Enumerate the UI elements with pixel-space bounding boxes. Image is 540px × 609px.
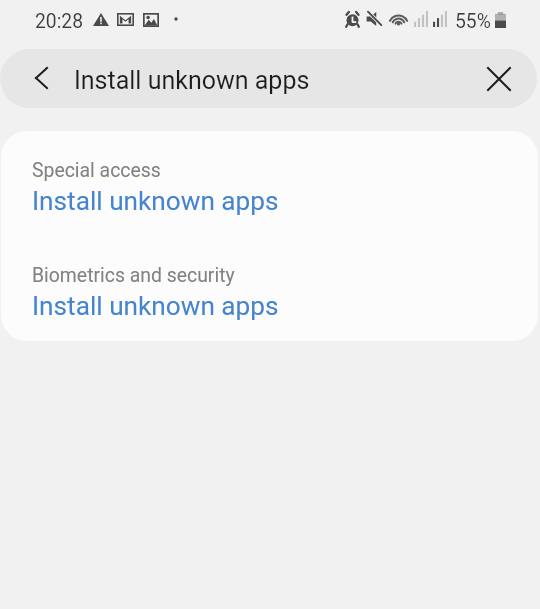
button[interactable]: Navigate up bbox=[19, 56, 63, 100]
staticText: Install unknown apps bbox=[32, 291, 279, 322]
staticText: Special access bbox=[32, 159, 161, 182]
staticText: Biometrics and security bbox=[32, 264, 235, 287]
staticText: 20:28 bbox=[35, 10, 84, 33]
staticText: Install unknown apps bbox=[74, 66, 310, 95]
staticText: 55% bbox=[455, 10, 491, 33]
button[interactable]: Biometrics and security bbox=[1, 235, 538, 341]
staticText: Install unknown apps bbox=[32, 186, 279, 217]
button[interactable]: Special access bbox=[1, 131, 538, 235]
button[interactable]: Clear search bbox=[476, 56, 521, 101]
